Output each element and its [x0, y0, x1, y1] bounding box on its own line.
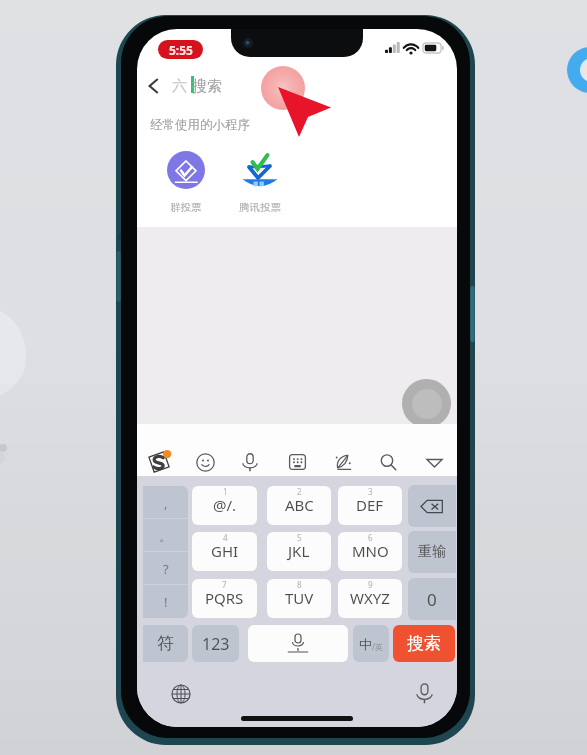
staticText: 0	[427, 588, 437, 611]
staticText: 123	[202, 633, 230, 655]
staticText: ,	[164, 494, 168, 512]
button[interactable]: 。	[143, 519, 188, 552]
staticText: 腾讯投票	[239, 201, 281, 214]
button[interactable]: 4	[192, 532, 257, 571]
staticText: 6	[368, 532, 373, 543]
staticText: ?	[163, 560, 169, 578]
button[interactable]: 0	[408, 578, 456, 620]
button[interactable]: Voice input	[412, 681, 436, 705]
button[interactable]: 符	[143, 625, 188, 662]
button[interactable]: Search	[368, 445, 408, 479]
button[interactable]: Handwriting	[323, 445, 363, 479]
button[interactable]: ?	[143, 552, 188, 585]
staticText: !	[164, 593, 168, 611]
staticText: 1	[223, 486, 228, 497]
button[interactable]: Keyboard	[277, 445, 317, 479]
button[interactable]: Switch language	[169, 682, 193, 706]
staticText: 。	[159, 528, 172, 544]
staticText: 7	[222, 579, 227, 590]
button[interactable]: 2	[267, 486, 331, 525]
staticText: MNO	[352, 541, 389, 561]
staticText: 搜索	[407, 633, 441, 654]
button[interactable]: 5	[267, 532, 331, 571]
staticText: 重输	[418, 543, 446, 561]
button[interactable]: Hide keyboard	[414, 445, 454, 479]
button[interactable]: ,	[143, 486, 188, 519]
staticText: JKL	[288, 541, 310, 561]
staticText: 8	[297, 579, 302, 590]
button[interactable]: 中	[353, 625, 389, 662]
button[interactable]: 123	[192, 625, 239, 662]
staticText: 经常使用的小程序	[150, 117, 250, 133]
staticText: 5:55	[169, 42, 193, 58]
button[interactable]: Voice input	[230, 445, 270, 479]
staticText: ABC	[285, 495, 314, 515]
button[interactable]: Backspace	[408, 485, 456, 527]
button[interactable]: Back	[141, 74, 165, 98]
button[interactable]: 1	[192, 486, 257, 525]
staticText: PQRS	[205, 588, 244, 608]
button[interactable]: 9	[338, 579, 402, 618]
button[interactable]: 六	[166, 74, 256, 98]
button[interactable]: 重输	[408, 531, 456, 573]
button[interactable]: 7	[192, 579, 257, 618]
button[interactable]: Emoji	[185, 445, 225, 479]
button[interactable]: Space	[248, 625, 348, 662]
staticText: 4	[223, 532, 228, 543]
button[interactable]: 搜索	[393, 625, 455, 662]
button[interactable]: !	[143, 585, 188, 618]
button[interactable]: 腾讯投票	[223, 151, 297, 214]
button[interactable]: AssistiveTouch	[402, 379, 451, 428]
staticText: 搜索	[192, 77, 222, 96]
button[interactable]: 6	[338, 532, 402, 571]
staticText: 符	[157, 633, 174, 654]
button[interactable]: Sogou input	[139, 445, 179, 479]
staticText: 2	[297, 486, 302, 497]
staticText: 5	[297, 532, 302, 543]
staticText: GHI	[211, 541, 239, 561]
staticText: 3	[368, 486, 373, 497]
staticText: 9	[368, 579, 373, 590]
staticText: DEF	[356, 495, 384, 515]
staticText: 中	[359, 636, 372, 652]
button[interactable]: 3	[338, 486, 402, 525]
staticText: TUV	[285, 588, 314, 608]
staticText: 六	[172, 77, 187, 96]
staticText: WXYZ	[350, 588, 390, 608]
button[interactable]: 8	[267, 579, 331, 618]
button[interactable]: 群投票	[149, 151, 223, 214]
staticText: @/.	[213, 495, 237, 515]
staticText: /英	[372, 641, 383, 652]
staticText: 群投票	[170, 201, 202, 214]
